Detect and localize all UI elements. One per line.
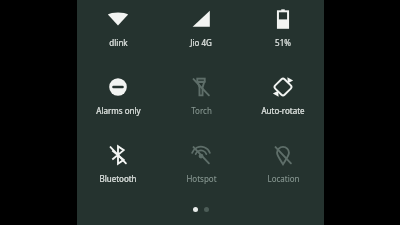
button[interactable]: Auto-rotate xyxy=(242,74,324,118)
staticText: Auto-rotate xyxy=(261,105,305,116)
staticText: Torch xyxy=(191,105,212,116)
button[interactable]: Bluetooth off xyxy=(77,142,159,186)
button[interactable]: Wi-Fi, dlink xyxy=(77,6,159,50)
button[interactable]: Battery 51 percent xyxy=(242,6,324,50)
staticText: Hotspot xyxy=(186,173,217,184)
staticText: dlink xyxy=(109,37,128,48)
staticText: Location xyxy=(267,173,300,184)
button[interactable]: Mobile data, Jio 4G xyxy=(160,6,242,50)
staticText: Alarms only xyxy=(96,105,141,116)
staticText: Jio 4G xyxy=(190,37,212,48)
button[interactable]: Location off xyxy=(242,142,324,186)
button[interactable]: Hotspot off xyxy=(160,142,242,186)
staticText: 51% xyxy=(275,37,291,48)
staticText: Bluetooth xyxy=(99,173,137,184)
button[interactable]: Do not disturb, alarms only xyxy=(77,74,159,118)
button[interactable]: Torch off xyxy=(160,74,242,118)
